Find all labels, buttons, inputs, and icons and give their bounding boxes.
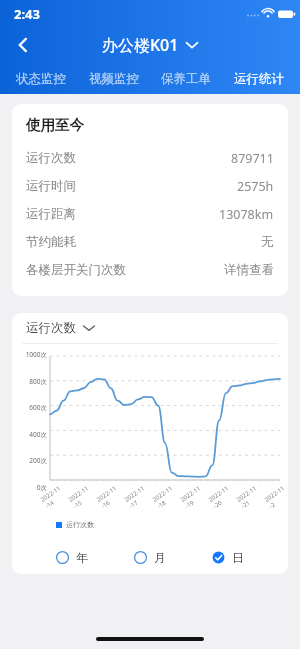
button[interactable]: 节约能耗 <box>26 228 274 256</box>
staticText: 运行时间 <box>26 178 76 194</box>
button[interactable]: 各楼层开关门次数 <box>26 256 274 284</box>
staticText: 运行次数 <box>26 320 76 336</box>
staticText: 13078km <box>219 206 274 223</box>
staticText: 800次 <box>29 377 47 386</box>
staticText: 2022-11-20 <box>207 483 236 510</box>
button[interactable]: 运行时间 <box>26 172 274 200</box>
staticText: 运行距离 <box>26 206 76 222</box>
button[interactable]: 保养工单 <box>159 67 213 91</box>
staticText: 保养工单 <box>161 71 211 87</box>
staticText: 2022-11-16 <box>95 483 124 510</box>
button[interactable]: Back <box>6 28 40 62</box>
button[interactable]: 视频监控 <box>87 67 141 91</box>
button[interactable]: 月 <box>130 546 170 569</box>
staticText: 879711 <box>231 150 274 167</box>
staticText: 年 <box>76 550 88 565</box>
staticText: 2022-11-15 <box>67 483 96 510</box>
staticText: 运行次数 <box>66 520 94 529</box>
button[interactable]: 运行距离 <box>26 200 274 228</box>
button[interactable]: 日 <box>208 546 248 569</box>
button[interactable]: 年 <box>52 546 92 569</box>
staticText: 节约能耗 <box>26 234 76 250</box>
staticText: 2022-11-2 <box>263 483 288 510</box>
staticText: 200次 <box>29 456 47 465</box>
staticText: 视频监控 <box>89 71 139 87</box>
staticText: 2022-11-19 <box>179 483 208 510</box>
staticText: 月 <box>154 550 166 565</box>
staticText: 2575h <box>237 178 274 195</box>
staticText: 600次 <box>29 403 47 412</box>
button[interactable]: 运行次数 <box>26 313 288 343</box>
button[interactable]: 运行次数 <box>26 144 274 172</box>
button[interactable]: 办公楼K01 <box>102 34 198 56</box>
staticText: 使用至今 <box>26 116 84 134</box>
staticText: 各楼层开关门次数 <box>26 262 126 278</box>
staticText: 日 <box>232 550 244 565</box>
staticText: 无 <box>261 234 274 250</box>
staticText: 2022-11-18 <box>151 483 180 510</box>
staticText: 2:43 <box>14 5 40 23</box>
button[interactable]: 运行统计 <box>232 67 286 91</box>
staticText: 1000次 <box>25 350 47 359</box>
staticText: 2022-11-21 <box>235 483 264 510</box>
staticText: 状态监控 <box>16 71 66 87</box>
staticText: 办公楼K01 <box>102 34 179 56</box>
button[interactable]: 状态监控 <box>14 67 68 91</box>
staticText: 运行次数 <box>26 150 76 166</box>
staticText: 2022-11-14 <box>39 483 68 510</box>
staticText: 详情查看 <box>224 262 274 278</box>
staticText: 运行统计 <box>234 71 284 87</box>
staticText: 2022-11-17 <box>123 483 152 510</box>
staticText: 400次 <box>29 430 47 439</box>
staticText: 0次 <box>36 483 47 492</box>
